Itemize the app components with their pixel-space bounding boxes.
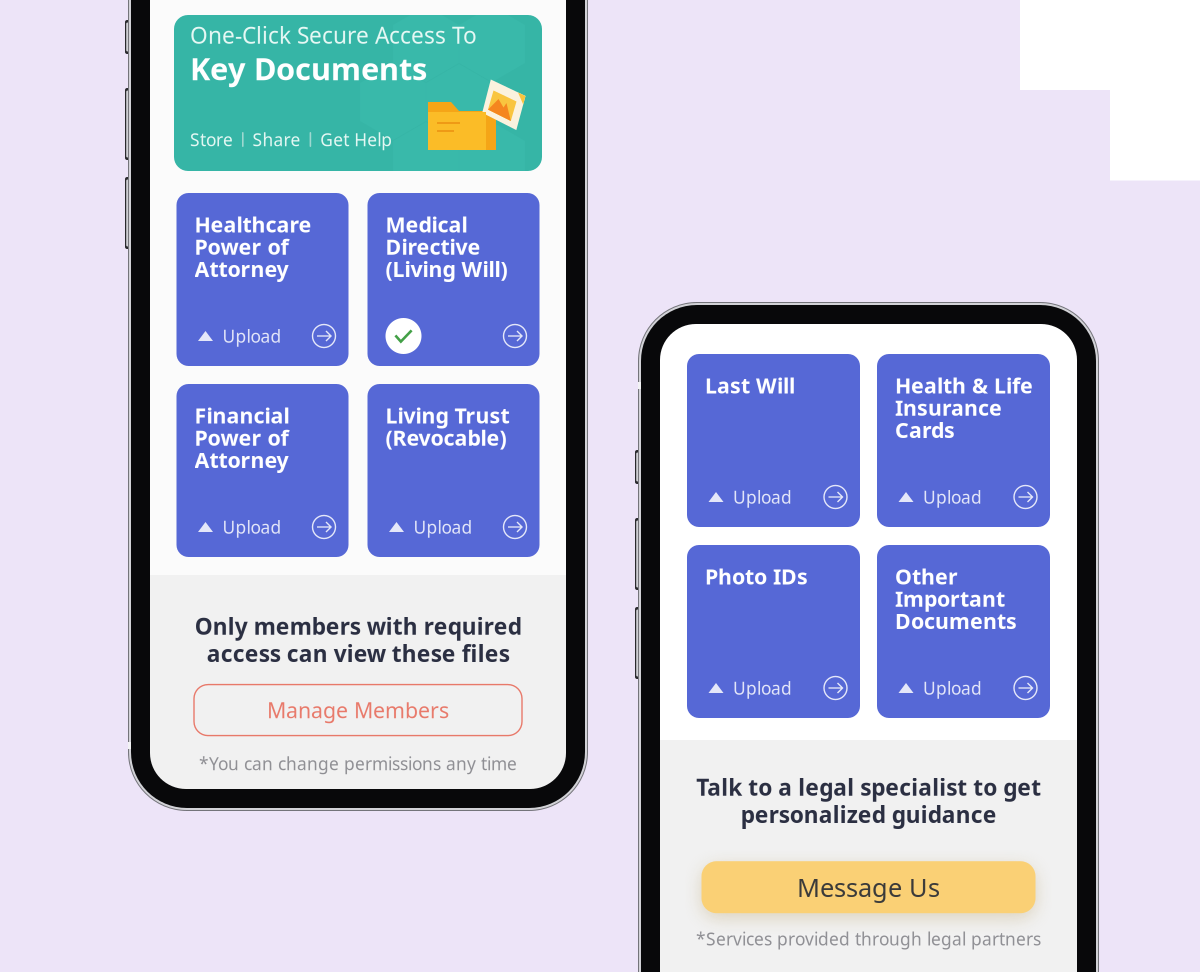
button[interactable]: Manage Members (194, 685, 522, 736)
staticText: Upload (222, 515, 281, 538)
staticText: Financial Power of Attorney (194, 401, 289, 474)
staticText: Other Important Documents (895, 562, 1017, 635)
staticText: Upload (413, 515, 472, 538)
staticText: Upload (923, 676, 982, 699)
button[interactable]: Message Us (701, 861, 1035, 913)
button[interactable]: Financial Power of Attorney (176, 384, 348, 557)
staticText: Living Trust (Revocable) (385, 401, 509, 452)
staticText: *Services provided through legal partner… (696, 927, 1041, 950)
staticText: Message Us (797, 870, 940, 904)
staticText: *You can change permissions any time (199, 752, 517, 775)
staticText: Get Help (320, 128, 392, 151)
button[interactable]: Living Trust (Revocable) (367, 384, 539, 557)
staticText: Manage Members (267, 696, 449, 724)
staticText: Medical Directive (Living Will) (385, 210, 507, 283)
staticText: Upload (733, 676, 792, 699)
button[interactable]: Medical Directive (Living Will) (367, 193, 539, 366)
staticText: Only members with required access can vi… (194, 611, 521, 668)
button[interactable]: Last Will (687, 354, 860, 527)
staticText: Share (253, 128, 301, 151)
staticText: Key Documents (190, 48, 427, 89)
staticText: Upload (733, 485, 792, 508)
staticText: Upload (222, 324, 281, 347)
staticText: One-Click Secure Access To (190, 20, 477, 50)
button[interactable]: Healthcare Power of Attorney (176, 193, 348, 366)
staticText: Last Will (705, 371, 795, 399)
staticText: Health & Life Insurance Cards (895, 371, 1033, 444)
button[interactable]: Other Important Documents (877, 545, 1050, 718)
staticText: Upload (923, 485, 982, 508)
staticText: Talk to a legal specialist to get person… (696, 772, 1041, 829)
button[interactable]: Health & Life Insurance Cards (877, 354, 1050, 527)
button[interactable]: Photo IDs (687, 545, 860, 718)
staticText: Store (190, 128, 233, 151)
staticText: Healthcare Power of Attorney (194, 210, 311, 283)
staticText: Photo IDs (705, 562, 808, 590)
